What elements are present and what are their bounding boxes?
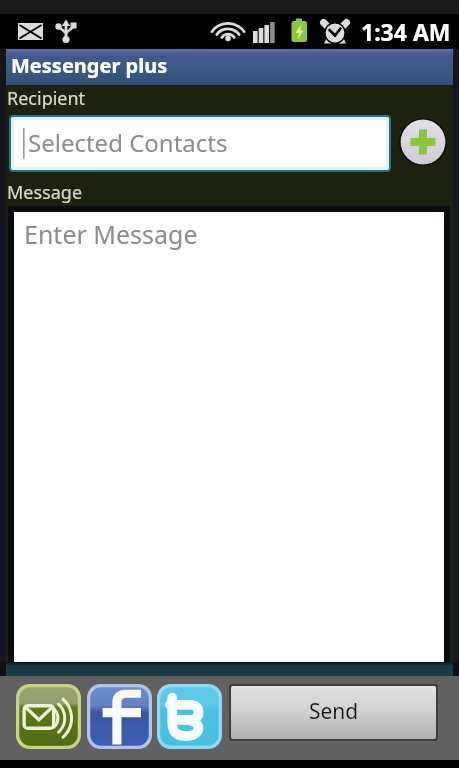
staticText: Selected Contacts — [28, 126, 228, 159]
staticText: 1:34 AM — [361, 16, 451, 47]
button[interactable]: Send — [229, 684, 438, 741]
button[interactable]: Twitter — [157, 684, 222, 749]
button[interactable]: SMS — [16, 684, 81, 749]
button[interactable]: Facebook — [87, 684, 152, 749]
button[interactable]: Add recipient — [399, 118, 447, 166]
button[interactable]: Selected Contacts — [14, 120, 386, 167]
button[interactable]: Enter Message — [14, 212, 444, 662]
staticText: Send — [309, 697, 359, 726]
staticText: Recipient — [7, 86, 86, 111]
staticText: Messenger plus — [11, 52, 168, 79]
staticText: Enter Message — [24, 217, 198, 251]
staticText: Message — [7, 180, 83, 205]
